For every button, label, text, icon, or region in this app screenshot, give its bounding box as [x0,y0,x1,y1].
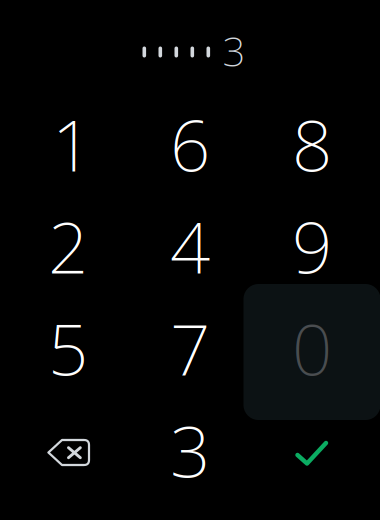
button[interactable]: Delete [7,399,129,501]
button[interactable]: 5 [7,297,129,399]
staticText: 4 [170,199,210,293]
button[interactable]: 8 [251,93,373,195]
button[interactable]: 7 [129,297,251,399]
staticText: 6 [170,97,210,191]
button[interactable]: 0 [251,297,373,399]
staticText: 2 [48,199,88,293]
staticText: 7 [170,301,210,395]
staticText: 9 [292,199,332,293]
staticText: 0 [292,301,332,395]
button[interactable]: 9 [251,195,373,297]
staticText: 5 [48,301,88,395]
staticText: 3 [222,24,245,77]
staticText: 3 [170,403,210,497]
staticText: 8 [292,97,332,191]
button[interactable]: 1 [7,93,129,195]
button[interactable]: 4 [129,195,251,297]
button[interactable]: Confirm [251,399,373,501]
button[interactable]: 3 [129,399,251,501]
button[interactable]: 6 [129,93,251,195]
staticText: 1 [52,97,92,191]
button[interactable]: 2 [7,195,129,297]
